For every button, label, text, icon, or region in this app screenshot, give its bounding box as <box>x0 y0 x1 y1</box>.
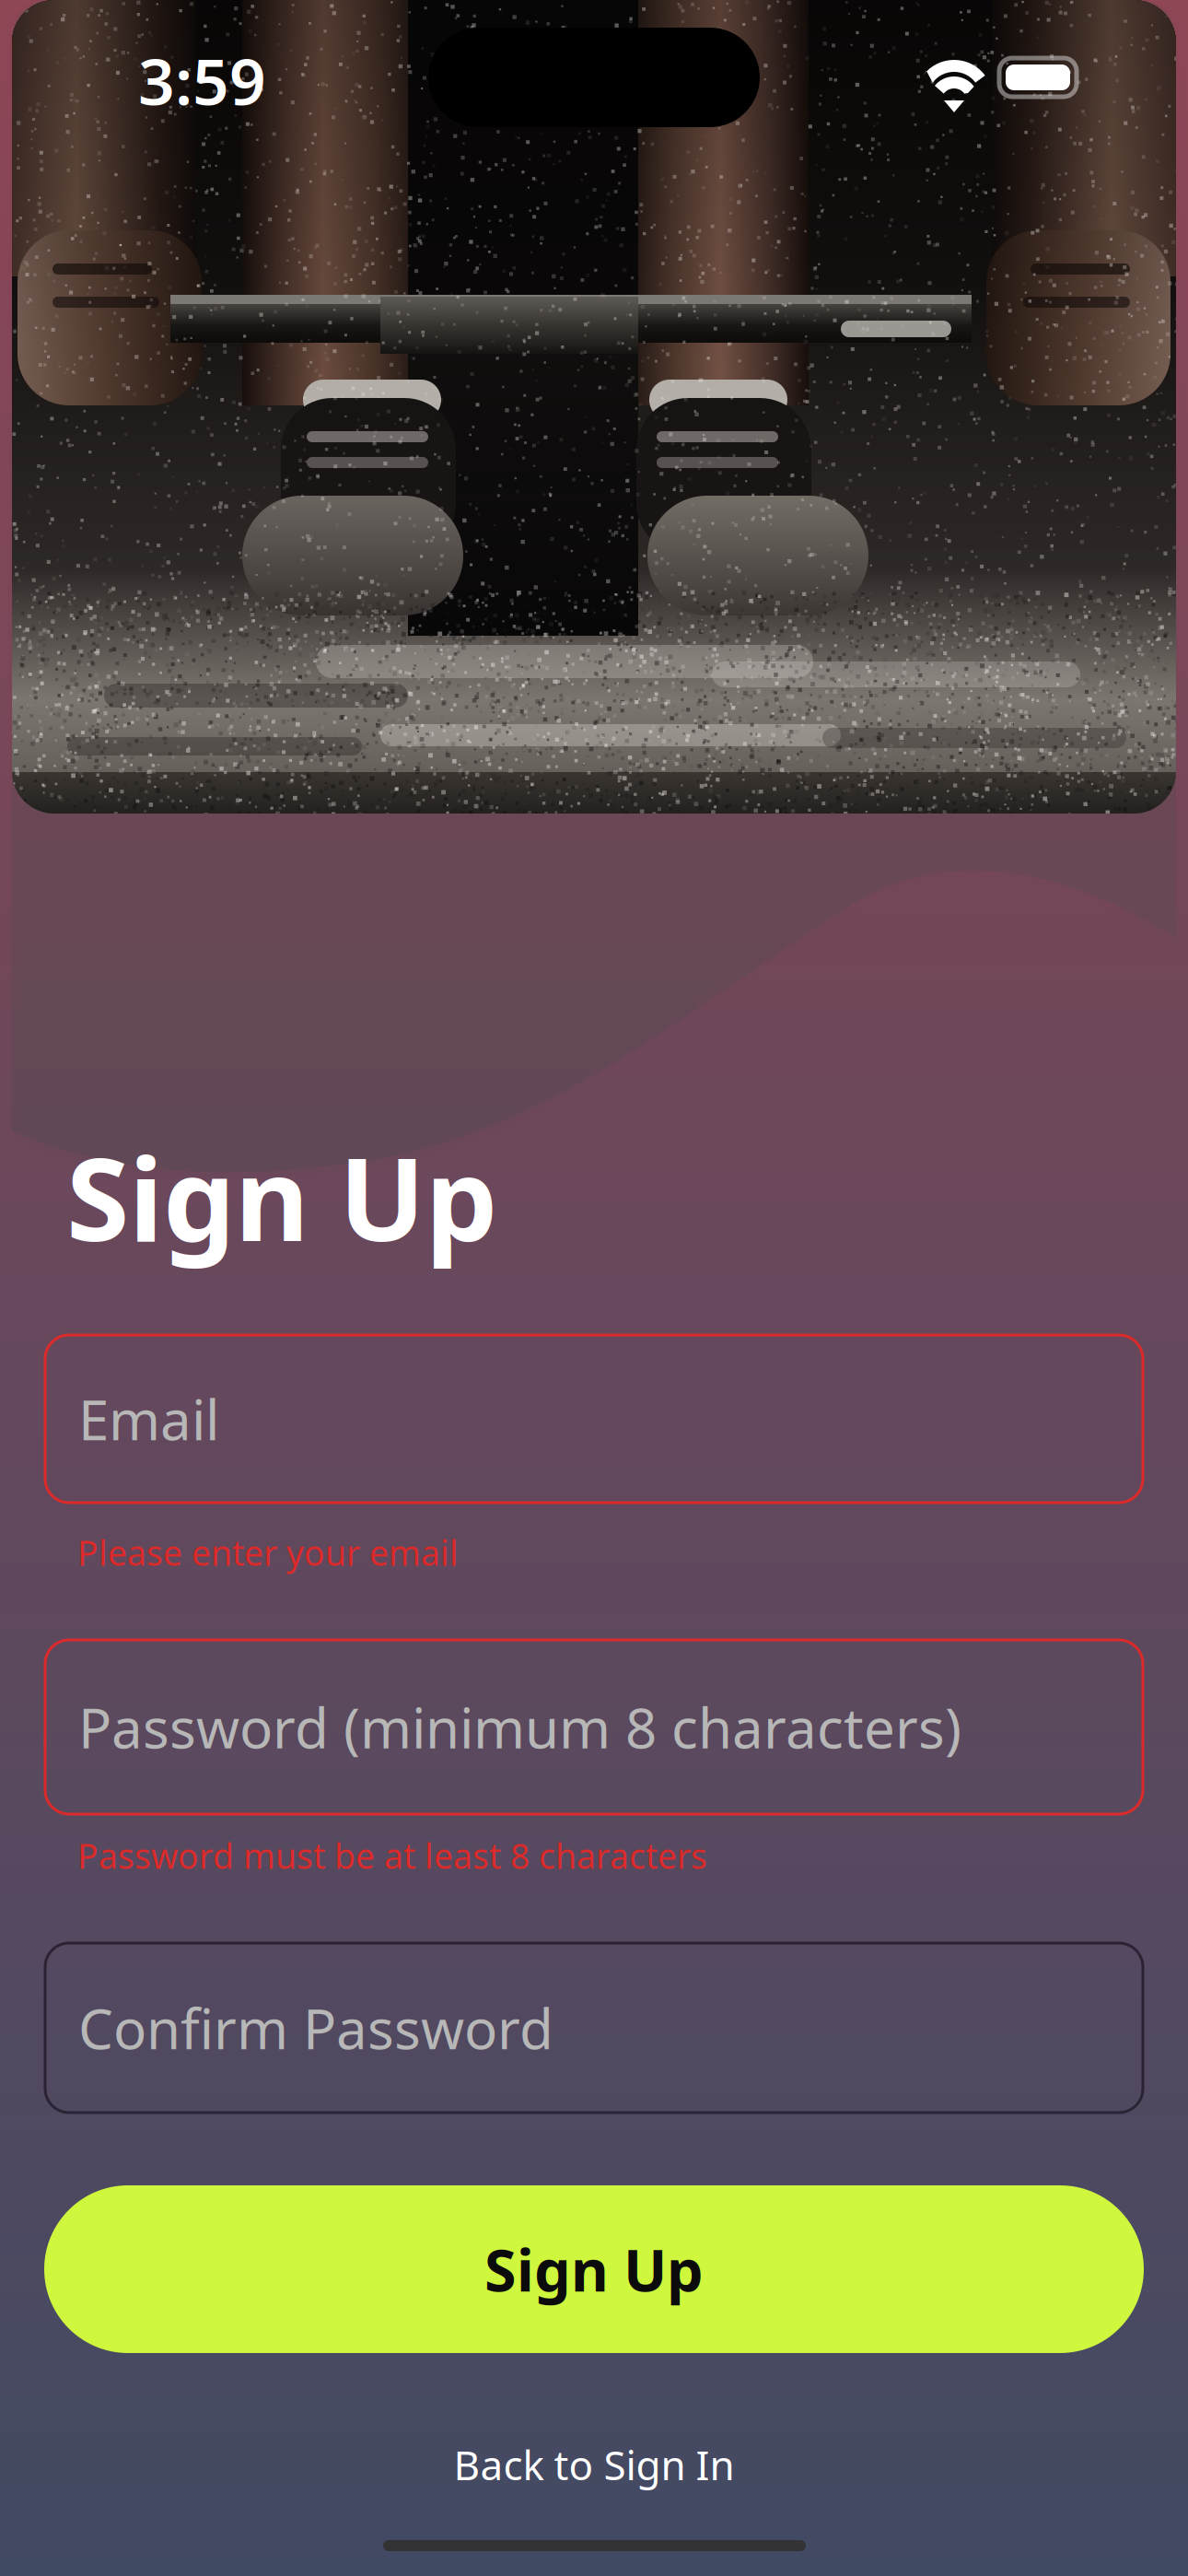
staticText: Password (minimum 8 characters) <box>78 1690 961 1764</box>
staticText: Back to Sign In <box>454 2438 734 2491</box>
staticText: Sign Up <box>66 1121 497 1273</box>
staticText: Confirm Password <box>78 1991 553 2065</box>
button[interactable]: Sign Up <box>44 2185 1144 2353</box>
button[interactable]: Back to Sign In <box>318 2428 870 2501</box>
staticText: Password must be at least 8 characters <box>77 1833 707 1878</box>
staticText: Sign Up <box>484 2231 704 2308</box>
staticText: 3:59 <box>138 38 266 123</box>
staticText: Email <box>78 1382 219 1456</box>
staticText: Please enter your email <box>77 1530 459 1575</box>
